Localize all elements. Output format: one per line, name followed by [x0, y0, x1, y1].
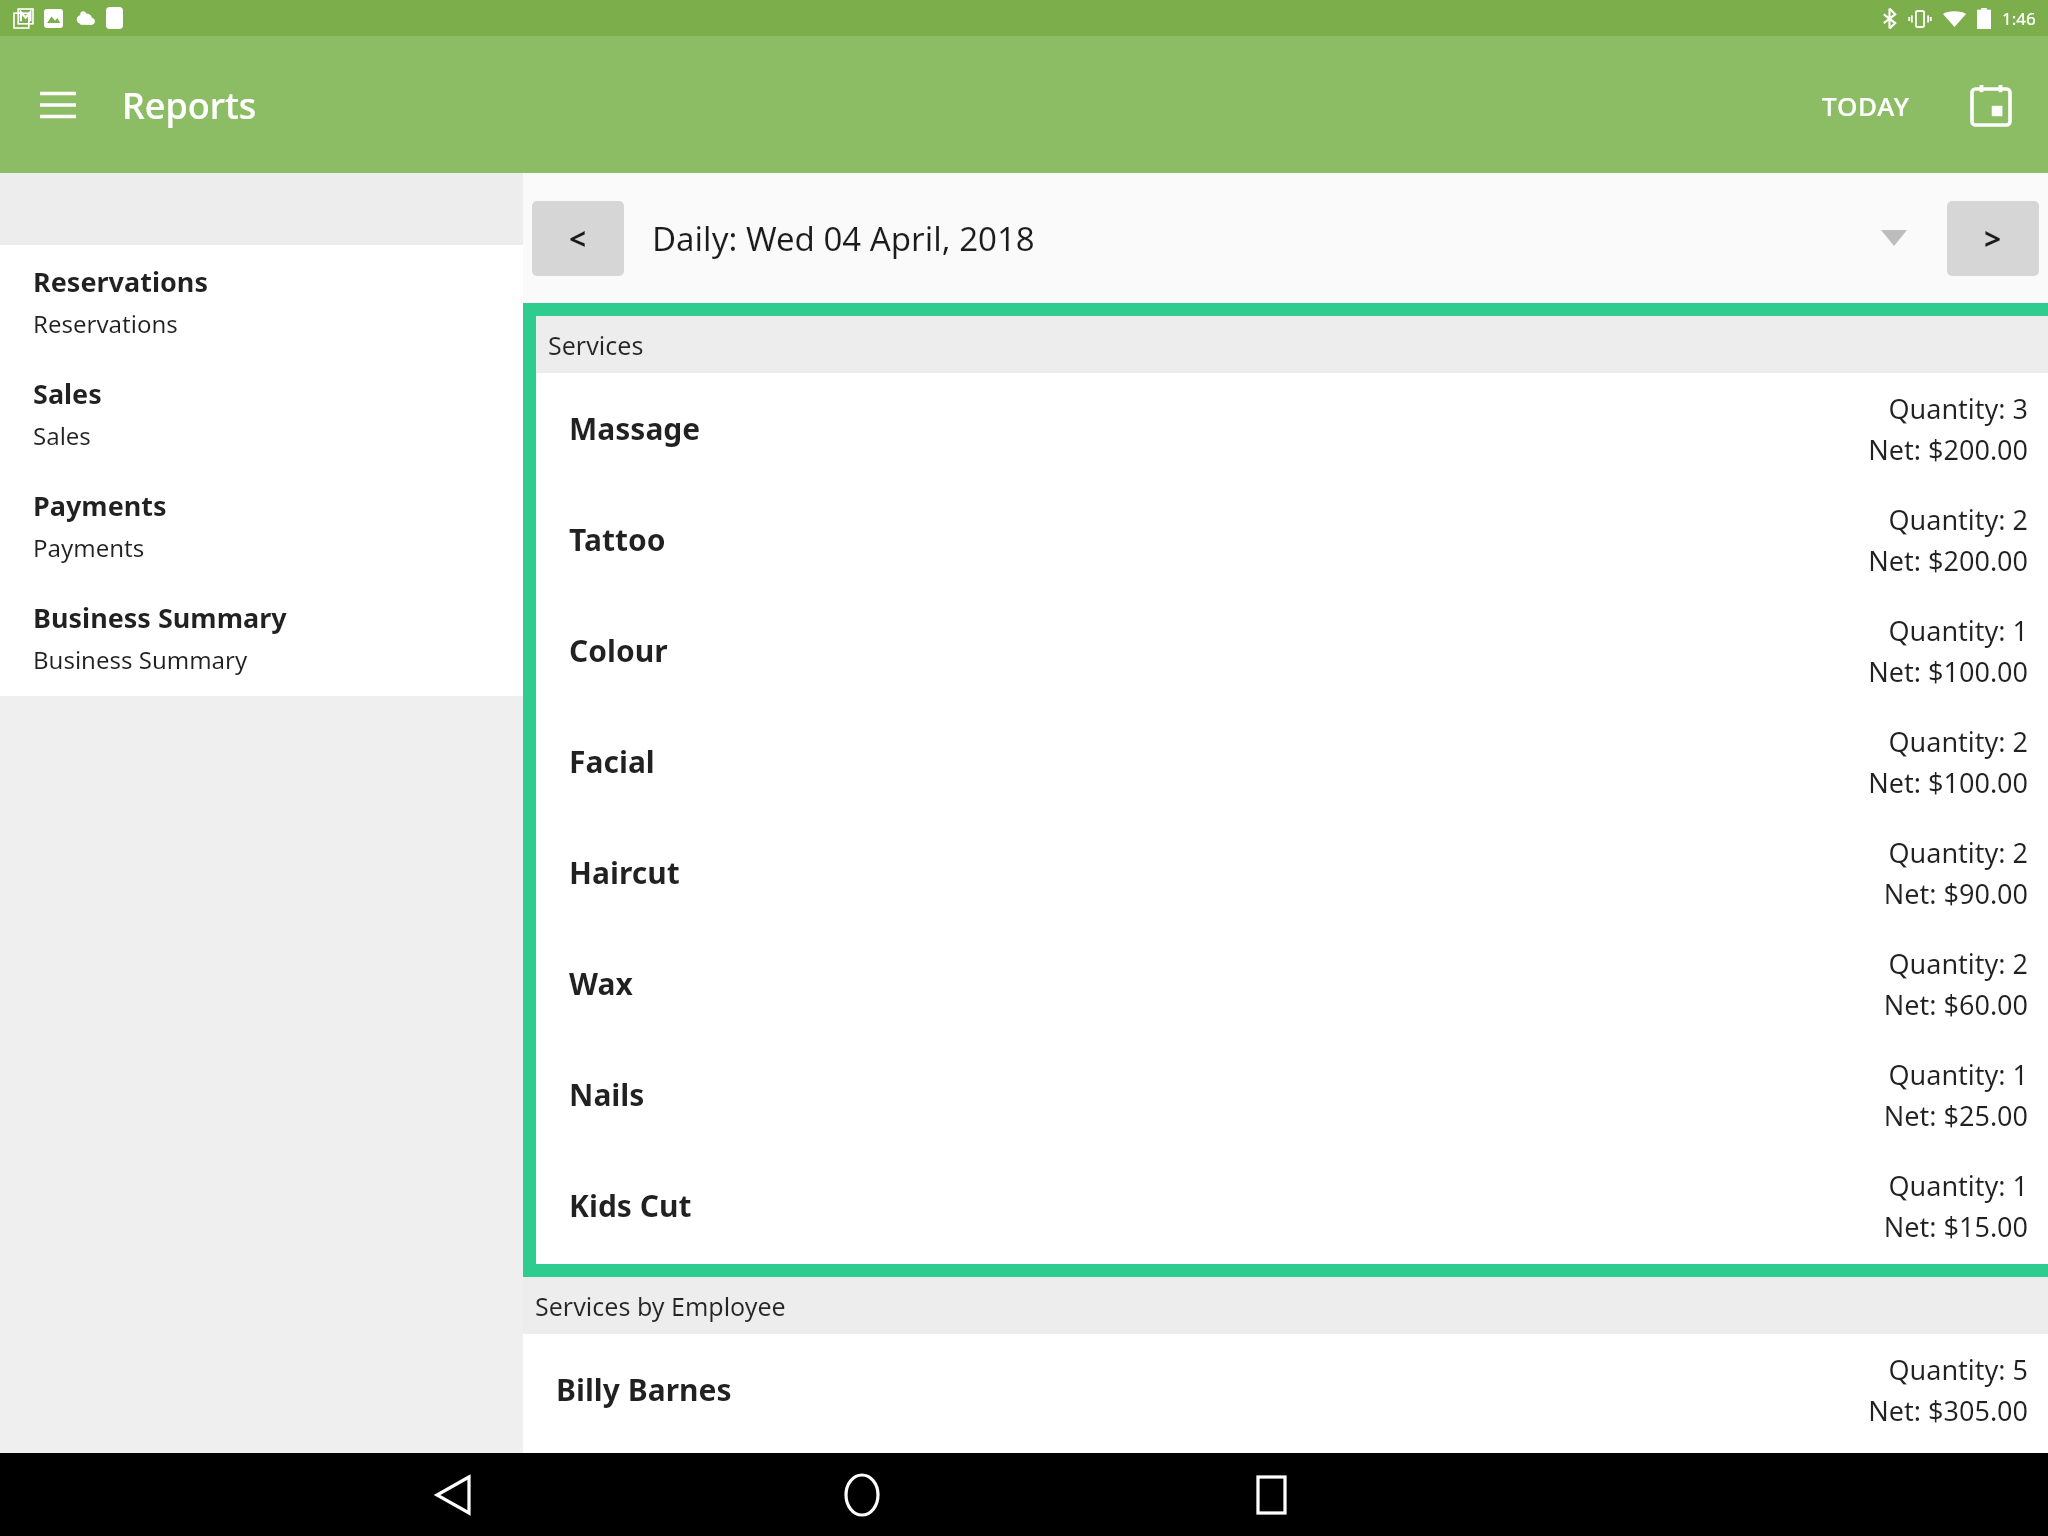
staticText: Net: $305.00 [1868, 1392, 2028, 1429]
staticText: Services by Employee [535, 1289, 786, 1323]
button[interactable]: Colour [536, 595, 2048, 706]
staticText: Payments [33, 531, 145, 564]
staticText: Net: $100.00 [1868, 764, 2028, 801]
staticText: Quantity: 1 [1888, 1056, 2028, 1093]
staticText: Net: $15.00 [1883, 1208, 2028, 1245]
staticText: Quantity: 2 [1888, 945, 2028, 982]
staticText: 1:46 [2002, 7, 2036, 30]
button[interactable]: Massage [536, 373, 2048, 484]
staticText: Quantity: 2 [1888, 723, 2028, 760]
staticText: Wax [569, 963, 633, 1004]
staticText: Daily: Wed 04 April, 2018 [652, 216, 1035, 261]
staticText: Quantity: 1 [1888, 612, 2028, 649]
button[interactable]: Kids Cut [536, 1150, 2048, 1261]
staticText: Services [548, 328, 644, 362]
button[interactable]: Services [536, 316, 2048, 1264]
staticText: Quantity: 1 [1888, 1167, 2028, 1204]
button[interactable]: Billy Barnes [523, 1334, 2048, 1445]
staticText: Net: $200.00 [1868, 431, 2028, 468]
button[interactable]: Back [417, 1459, 489, 1531]
staticText: Billy Barnes [556, 1369, 732, 1410]
staticText: TODAY [1822, 88, 1910, 123]
button[interactable]: Business Summary [0, 581, 523, 693]
staticText: Business Summary [33, 643, 248, 676]
button[interactable]: Reservations [0, 245, 523, 357]
staticText: Facial [569, 741, 655, 782]
staticText: < [569, 218, 587, 259]
button[interactable]: Facial [536, 706, 2048, 817]
staticText: Net: $25.00 [1883, 1097, 2028, 1134]
staticText: Quantity: 2 [1888, 501, 2028, 538]
staticText: Net: $100.00 [1868, 653, 2028, 690]
button[interactable]: Next day [1947, 201, 2039, 276]
button[interactable]: Daily: Wed 04 April, 2018 [624, 173, 1947, 303]
button[interactable]: Nails [536, 1039, 2048, 1150]
staticText: > [1984, 218, 2002, 259]
button[interactable]: Tattoo [536, 484, 2048, 595]
button[interactable]: Haircut [536, 817, 2048, 928]
staticText: Reservations [33, 263, 208, 300]
staticText: Haircut [569, 852, 680, 893]
button[interactable]: Sales [0, 357, 523, 469]
staticText: Nails [569, 1074, 645, 1115]
staticText: Sales [33, 375, 102, 412]
button[interactable]: Previous day [532, 201, 624, 276]
staticText: Sales [33, 419, 91, 452]
button[interactable]: Wax [536, 928, 2048, 1039]
staticText: Reservations [33, 307, 178, 340]
staticText: Net: $60.00 [1883, 986, 2028, 1023]
staticText: Net: $90.00 [1883, 875, 2028, 912]
staticText: Payments [33, 487, 167, 524]
button[interactable]: Open navigation menu [30, 77, 86, 133]
staticText: Kids Cut [569, 1185, 692, 1226]
staticText: Tattoo [569, 519, 666, 560]
staticText: Business Summary [33, 599, 287, 636]
staticText: Net: $200.00 [1868, 542, 2028, 579]
button[interactable]: Payments [0, 469, 523, 581]
button[interactable]: TODAY [1808, 78, 1924, 133]
button[interactable]: Pick date [1960, 74, 2022, 136]
staticText: Massage [569, 408, 701, 449]
staticText: Quantity: 2 [1888, 834, 2028, 871]
button[interactable]: Recent apps [1235, 1459, 1307, 1531]
button[interactable]: Home [826, 1459, 898, 1531]
staticText: Quantity: 3 [1888, 390, 2028, 427]
staticText: Quantity: 5 [1888, 1351, 2028, 1388]
staticText: Reports [122, 81, 257, 130]
staticText: Colour [569, 630, 668, 671]
